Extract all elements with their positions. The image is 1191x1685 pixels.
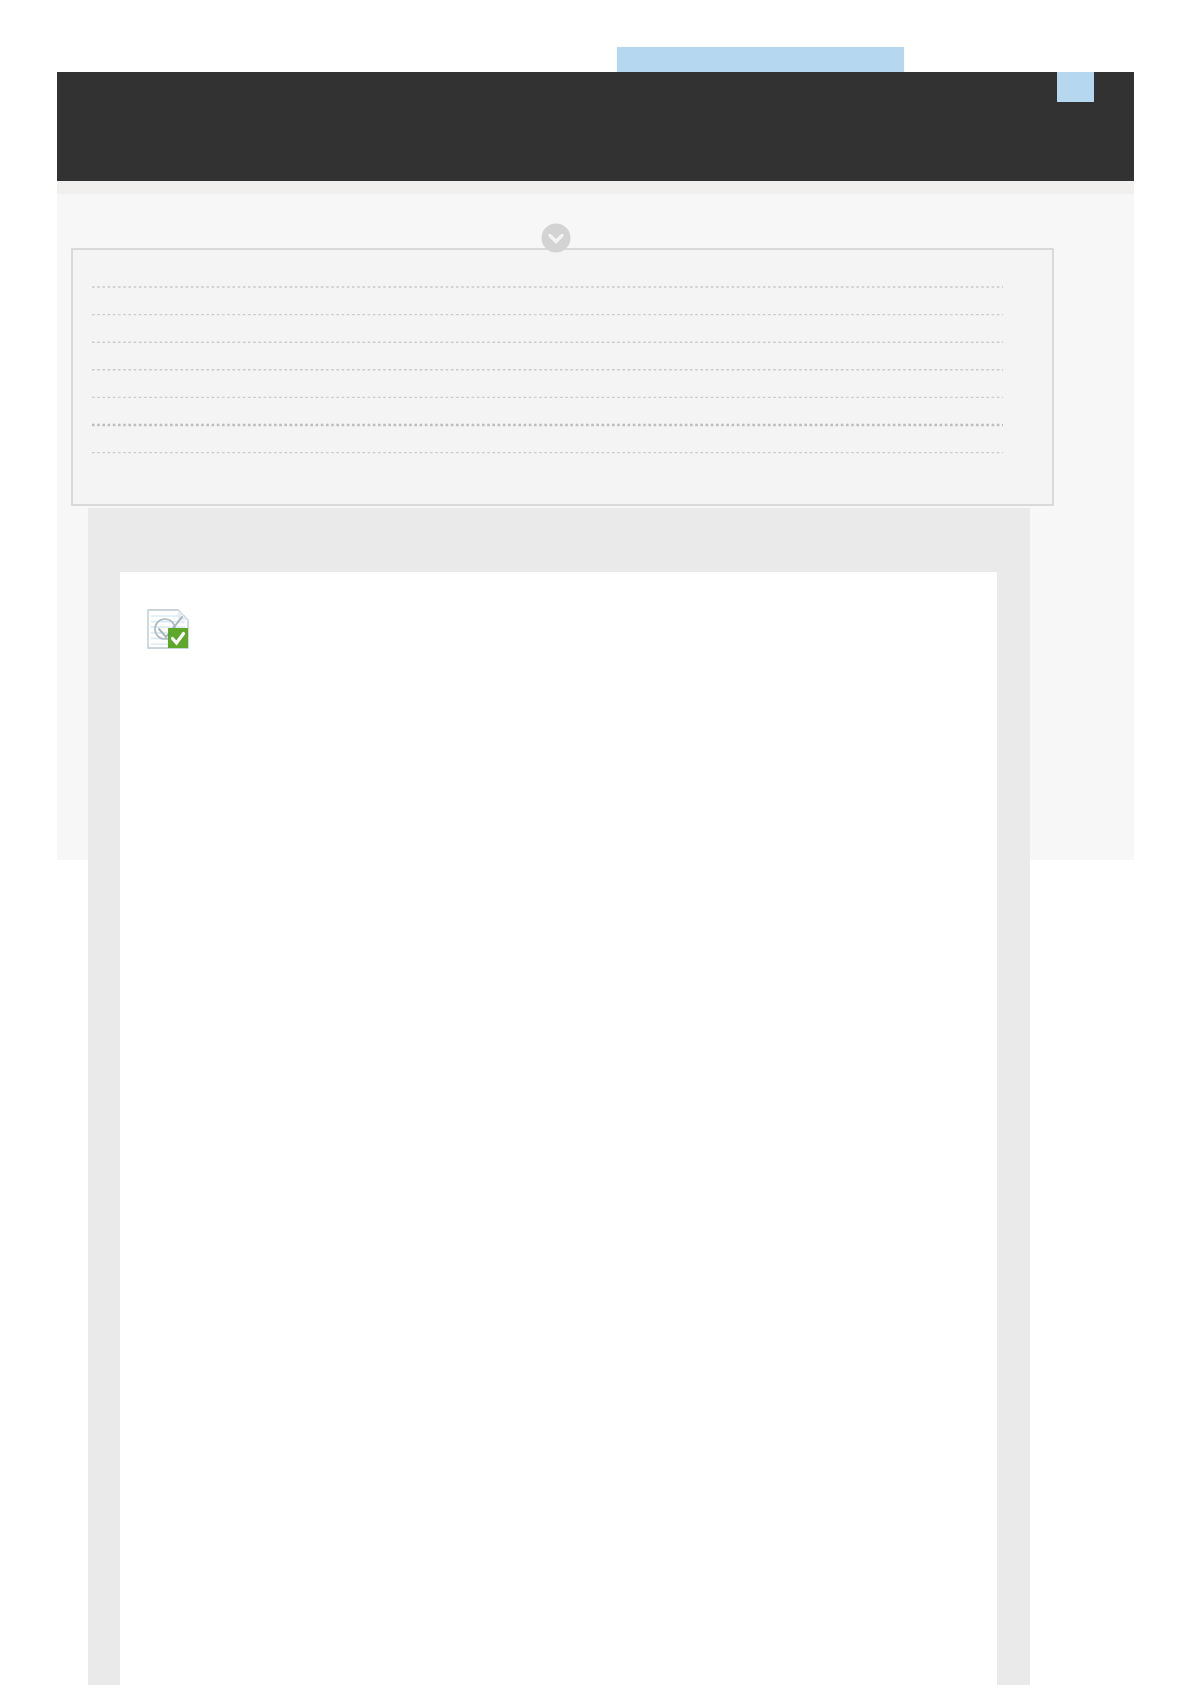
- button[interactable]: Document completed: [146, 608, 190, 650]
- button[interactable]: Expand: [540, 222, 572, 254]
